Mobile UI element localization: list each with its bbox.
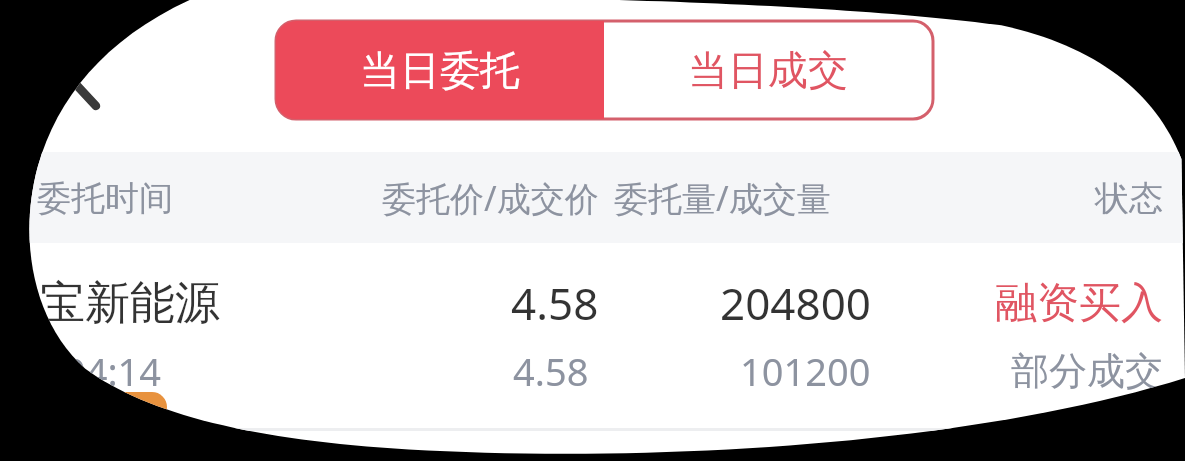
button[interactable] (276, 21, 604, 119)
button[interactable] (604, 21, 933, 119)
button[interactable] (20, 258, 1165, 428)
button[interactable]: Back (30, 48, 114, 124)
button[interactable]: Cancel order (98, 386, 174, 428)
